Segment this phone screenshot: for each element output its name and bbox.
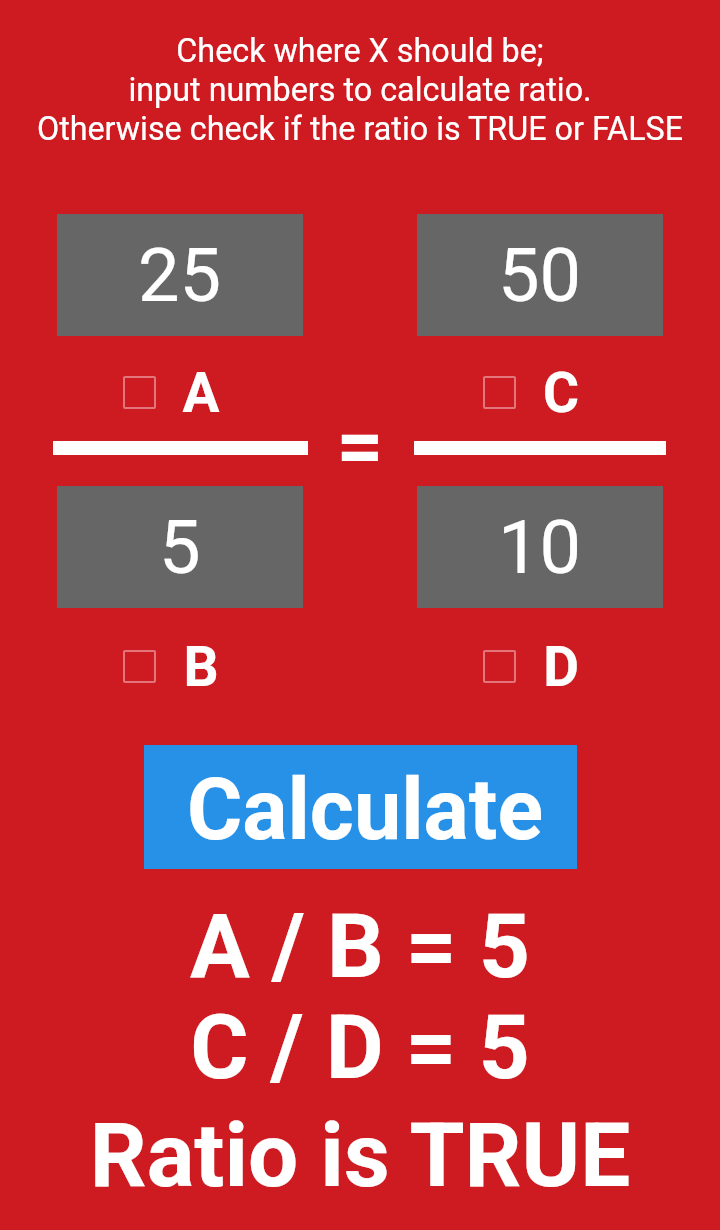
staticText: C / D = 5 bbox=[0, 995, 720, 1085]
button[interactable]: 25 bbox=[57, 214, 303, 336]
staticText: Ratio is TRUE bbox=[0, 1103, 720, 1193]
button[interactable]: 10 bbox=[417, 486, 663, 608]
button[interactable]: Mark D as unknown bbox=[483, 650, 516, 683]
staticText: = bbox=[320, 398, 400, 488]
button[interactable]: Mark B as unknown bbox=[123, 650, 156, 683]
staticText: Calculate bbox=[187, 761, 544, 860]
staticText: C bbox=[511, 361, 611, 425]
staticText: 50 bbox=[498, 232, 582, 319]
staticText: 10 bbox=[498, 504, 582, 591]
button[interactable]: Mark C as unknown bbox=[483, 376, 516, 409]
button[interactable]: 5 bbox=[57, 486, 303, 608]
staticText: D bbox=[511, 635, 611, 699]
staticText: 25 bbox=[138, 232, 222, 319]
staticText: A / B = 5 bbox=[0, 894, 720, 984]
button[interactable]: Calculate bbox=[144, 745, 577, 869]
staticText: 5 bbox=[159, 504, 201, 591]
staticText: B bbox=[151, 635, 251, 699]
staticText: Check where X should be; input numbers t… bbox=[0, 32, 720, 148]
staticText: A bbox=[151, 361, 251, 425]
button[interactable]: Mark A as unknown bbox=[123, 376, 156, 409]
button[interactable]: 50 bbox=[417, 214, 663, 336]
